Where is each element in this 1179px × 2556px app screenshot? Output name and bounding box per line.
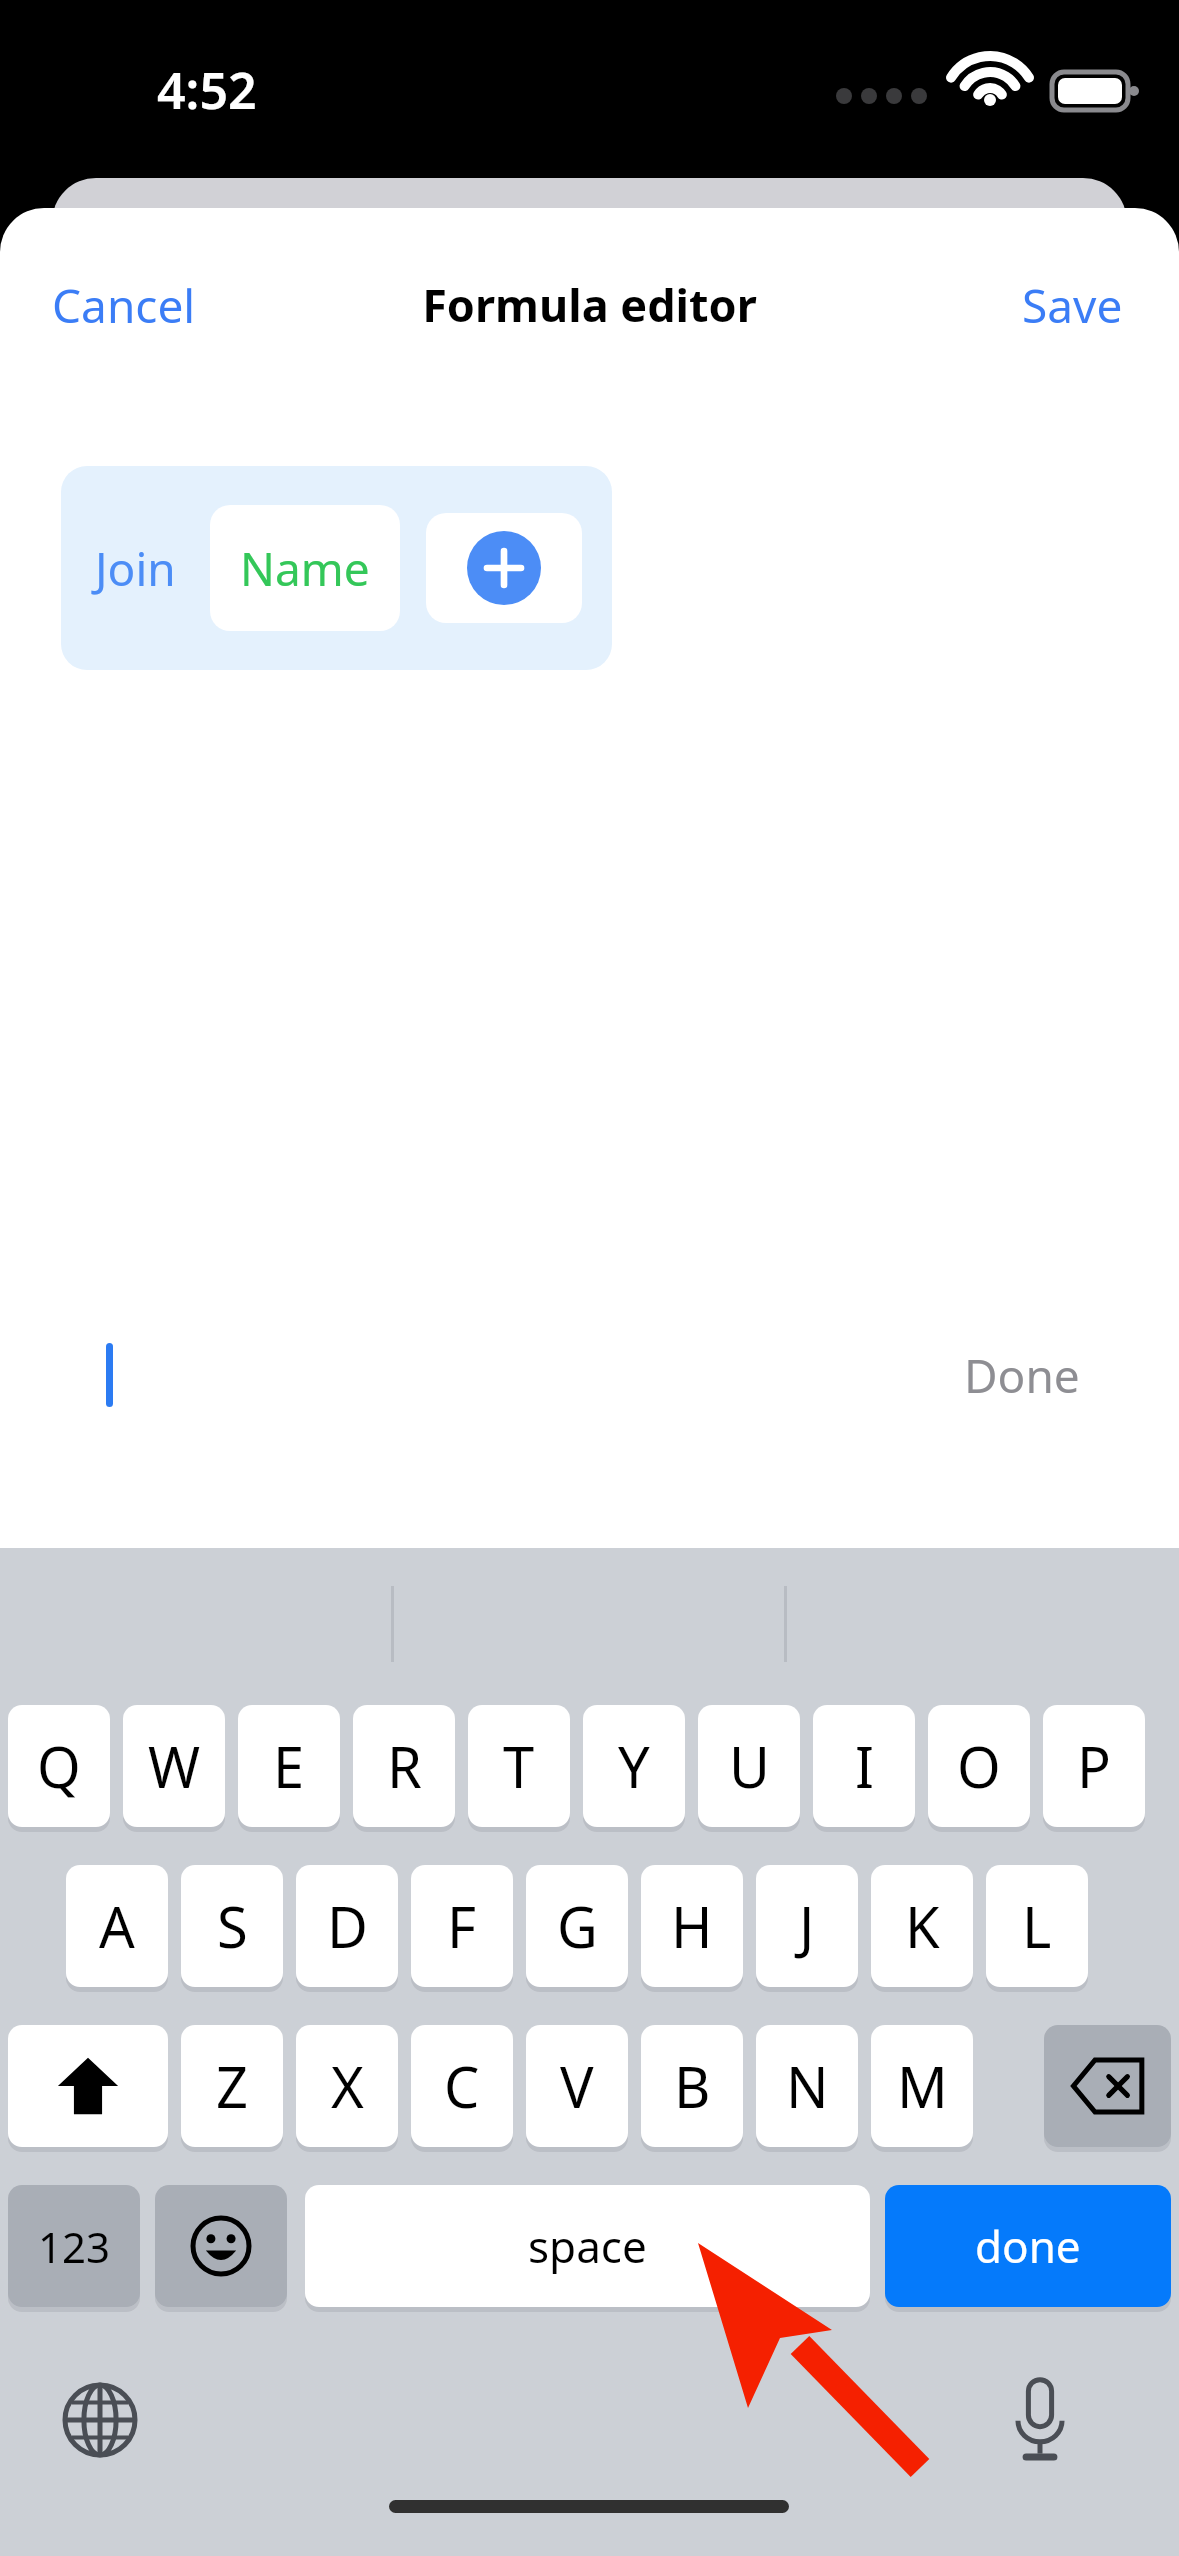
staticText: Save: [1022, 274, 1123, 337]
button[interactable]: O: [928, 1705, 1030, 1827]
staticText: T: [503, 1728, 535, 1804]
button[interactable]: U: [698, 1705, 800, 1827]
staticText: Done: [964, 1344, 1080, 1407]
staticText: done: [975, 2216, 1081, 2276]
button[interactable]: C: [411, 2025, 513, 2147]
button[interactable]: A: [66, 1865, 168, 1987]
staticText: B: [674, 2048, 711, 2124]
button[interactable]: R: [353, 1705, 455, 1827]
button[interactable]: Z: [181, 2025, 283, 2147]
button[interactable]: P: [1043, 1705, 1145, 1827]
staticText: G: [557, 1888, 598, 1964]
button[interactable]: W: [123, 1705, 225, 1827]
button[interactable]: S: [181, 1865, 283, 1987]
button[interactable]: K: [871, 1865, 973, 1987]
button[interactable]: Switch keyboard: [50, 2370, 150, 2470]
staticText: Join: [95, 537, 176, 600]
staticText: Z: [216, 2048, 249, 2124]
staticText: U: [729, 1728, 770, 1804]
button[interactable]: M: [871, 2025, 973, 2147]
staticText: A: [99, 1888, 135, 1964]
staticText: C: [444, 2048, 480, 2124]
button[interactable]: B: [641, 2025, 743, 2147]
button[interactable]: F: [411, 1865, 513, 1987]
button[interactable]: J: [756, 1865, 858, 1987]
button[interactable]: Save: [1006, 264, 1139, 347]
staticText: P: [1077, 1728, 1111, 1804]
staticText: W: [148, 1728, 201, 1804]
button[interactable]: Emoji: [155, 2185, 287, 2307]
button[interactable]: D: [296, 1865, 398, 1987]
staticText: space: [528, 2216, 647, 2276]
button[interactable]: N: [756, 2025, 858, 2147]
button[interactable]: done: [885, 2185, 1171, 2307]
button[interactable]: I: [813, 1705, 915, 1827]
staticText: J: [799, 1888, 815, 1964]
button[interactable]: T: [468, 1705, 570, 1827]
button[interactable]: Dictate: [990, 2370, 1090, 2470]
button[interactable]: V: [526, 2025, 628, 2147]
staticText: Y: [618, 1728, 650, 1804]
staticText: M: [897, 2048, 948, 2124]
staticText: E: [273, 1728, 305, 1804]
button[interactable]: G: [526, 1865, 628, 1987]
staticText: X: [331, 2048, 364, 2124]
staticText: 4:52: [157, 56, 257, 124]
button[interactable]: L: [986, 1865, 1088, 1987]
button[interactable]: H: [641, 1865, 743, 1987]
staticText: S: [217, 1888, 248, 1964]
button[interactable]: Done: [48, 1291, 1132, 1459]
staticText: F: [447, 1888, 477, 1964]
button[interactable]: Q: [8, 1705, 110, 1827]
button[interactable]: Cancel: [36, 264, 212, 347]
button[interactable]: 123: [8, 2185, 140, 2307]
staticText: Name: [240, 537, 370, 600]
button[interactable]: Y: [583, 1705, 685, 1827]
staticText: I: [855, 1728, 874, 1804]
button[interactable]: Delete: [1044, 2025, 1171, 2147]
staticText: R: [387, 1728, 422, 1804]
staticText: H: [671, 1888, 713, 1964]
staticText: Cancel: [52, 274, 196, 337]
staticText: O: [957, 1728, 1001, 1804]
button[interactable]: space: [305, 2185, 870, 2307]
staticText: L: [1022, 1888, 1052, 1964]
staticText: 123: [38, 2218, 111, 2275]
button[interactable]: E: [238, 1705, 340, 1827]
staticText: D: [327, 1888, 368, 1964]
staticText: N: [786, 2048, 829, 2124]
staticText: K: [905, 1888, 940, 1964]
staticText: Formula editor: [0, 274, 1179, 335]
button[interactable]: Join: [91, 529, 180, 608]
staticText: V: [560, 2048, 594, 2124]
button[interactable]: Shift: [8, 2025, 168, 2147]
button[interactable]: Add token: [426, 513, 582, 623]
staticText: Q: [37, 1728, 81, 1804]
button[interactable]: X: [296, 2025, 398, 2147]
button[interactable]: Name: [210, 505, 400, 631]
